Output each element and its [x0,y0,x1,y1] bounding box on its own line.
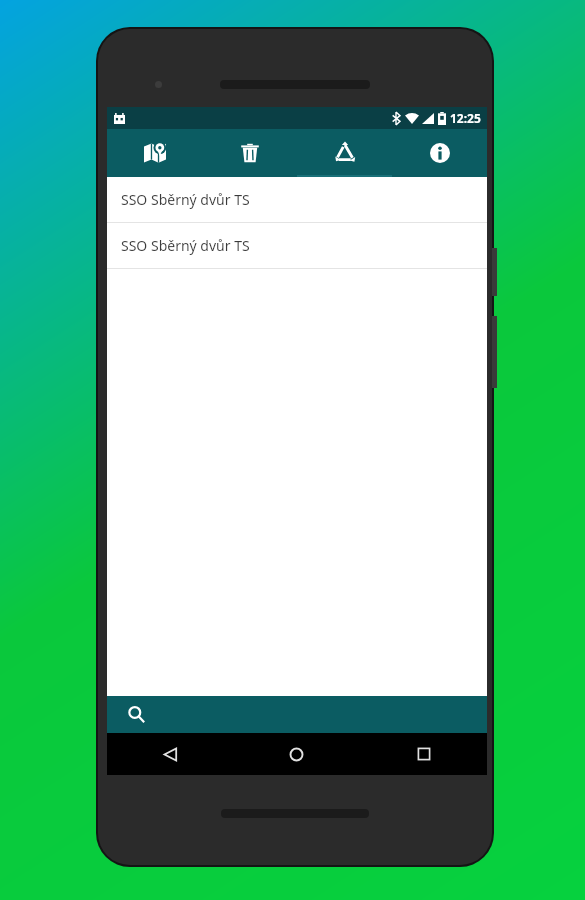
staticText: SSO Sběrný dvůr TS [121,190,250,209]
button[interactable]: Recycling [297,129,392,177]
button[interactable]: Info [392,129,487,177]
button[interactable]: SSO Sběrný dvůr TS [107,177,487,223]
button[interactable]: Waste bins [202,129,297,177]
staticText: SSO Sběrný dvůr TS [121,236,250,255]
button[interactable]: Back [107,733,233,775]
button[interactable]: Home [233,733,360,775]
button[interactable]: SSO Sběrný dvůr TS [107,223,487,269]
button[interactable]: Search [107,696,487,733]
button[interactable]: Map [107,129,202,177]
staticText: 12:25 [450,110,481,126]
button[interactable]: Recent apps [360,733,487,775]
